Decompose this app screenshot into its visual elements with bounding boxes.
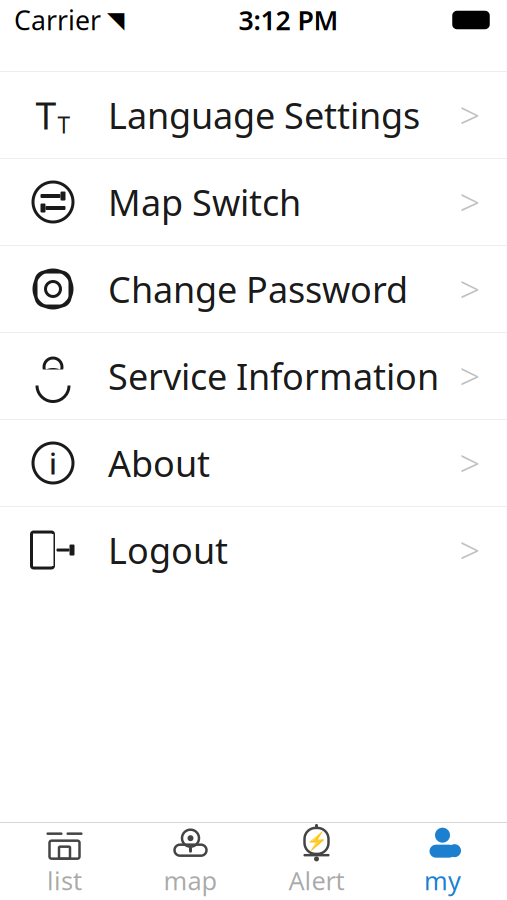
button[interactable]: T [0,72,507,159]
button[interactable]: ⚡ [253,823,379,899]
staticText: T [57,110,70,140]
staticText: > [459,91,480,139]
staticText: my [424,864,461,897]
button[interactable]: list [1,823,127,899]
staticText: 3:12 PM [238,2,338,38]
button[interactable]: i [0,420,507,507]
button[interactable]: Map Switch [0,159,507,246]
button[interactable]: Service Information [0,333,507,420]
staticText: > [459,526,480,574]
staticText: Service Information [108,352,439,400]
staticText: Change Password [108,265,408,313]
staticText: > [459,265,480,313]
staticText: map [163,864,217,897]
staticText: Logout [108,526,228,574]
staticText: Carrier [14,2,101,38]
staticText: ◥ [107,7,124,33]
staticText: > [459,352,480,400]
staticText: Language Settings [108,91,420,139]
staticText: i [49,443,57,482]
button[interactable]: map [127,823,253,899]
staticText: T [35,90,56,140]
staticText: Map Switch [108,178,301,226]
staticText: > [459,178,480,226]
staticText: Alert [288,864,344,897]
button[interactable]: Logout [0,507,507,594]
button[interactable]: my [379,823,505,899]
staticText: > [459,439,480,487]
staticText: list [47,864,82,897]
staticText: ⚡ [305,831,327,851]
button[interactable]: Change Password [0,246,507,333]
staticText: About [108,439,210,487]
